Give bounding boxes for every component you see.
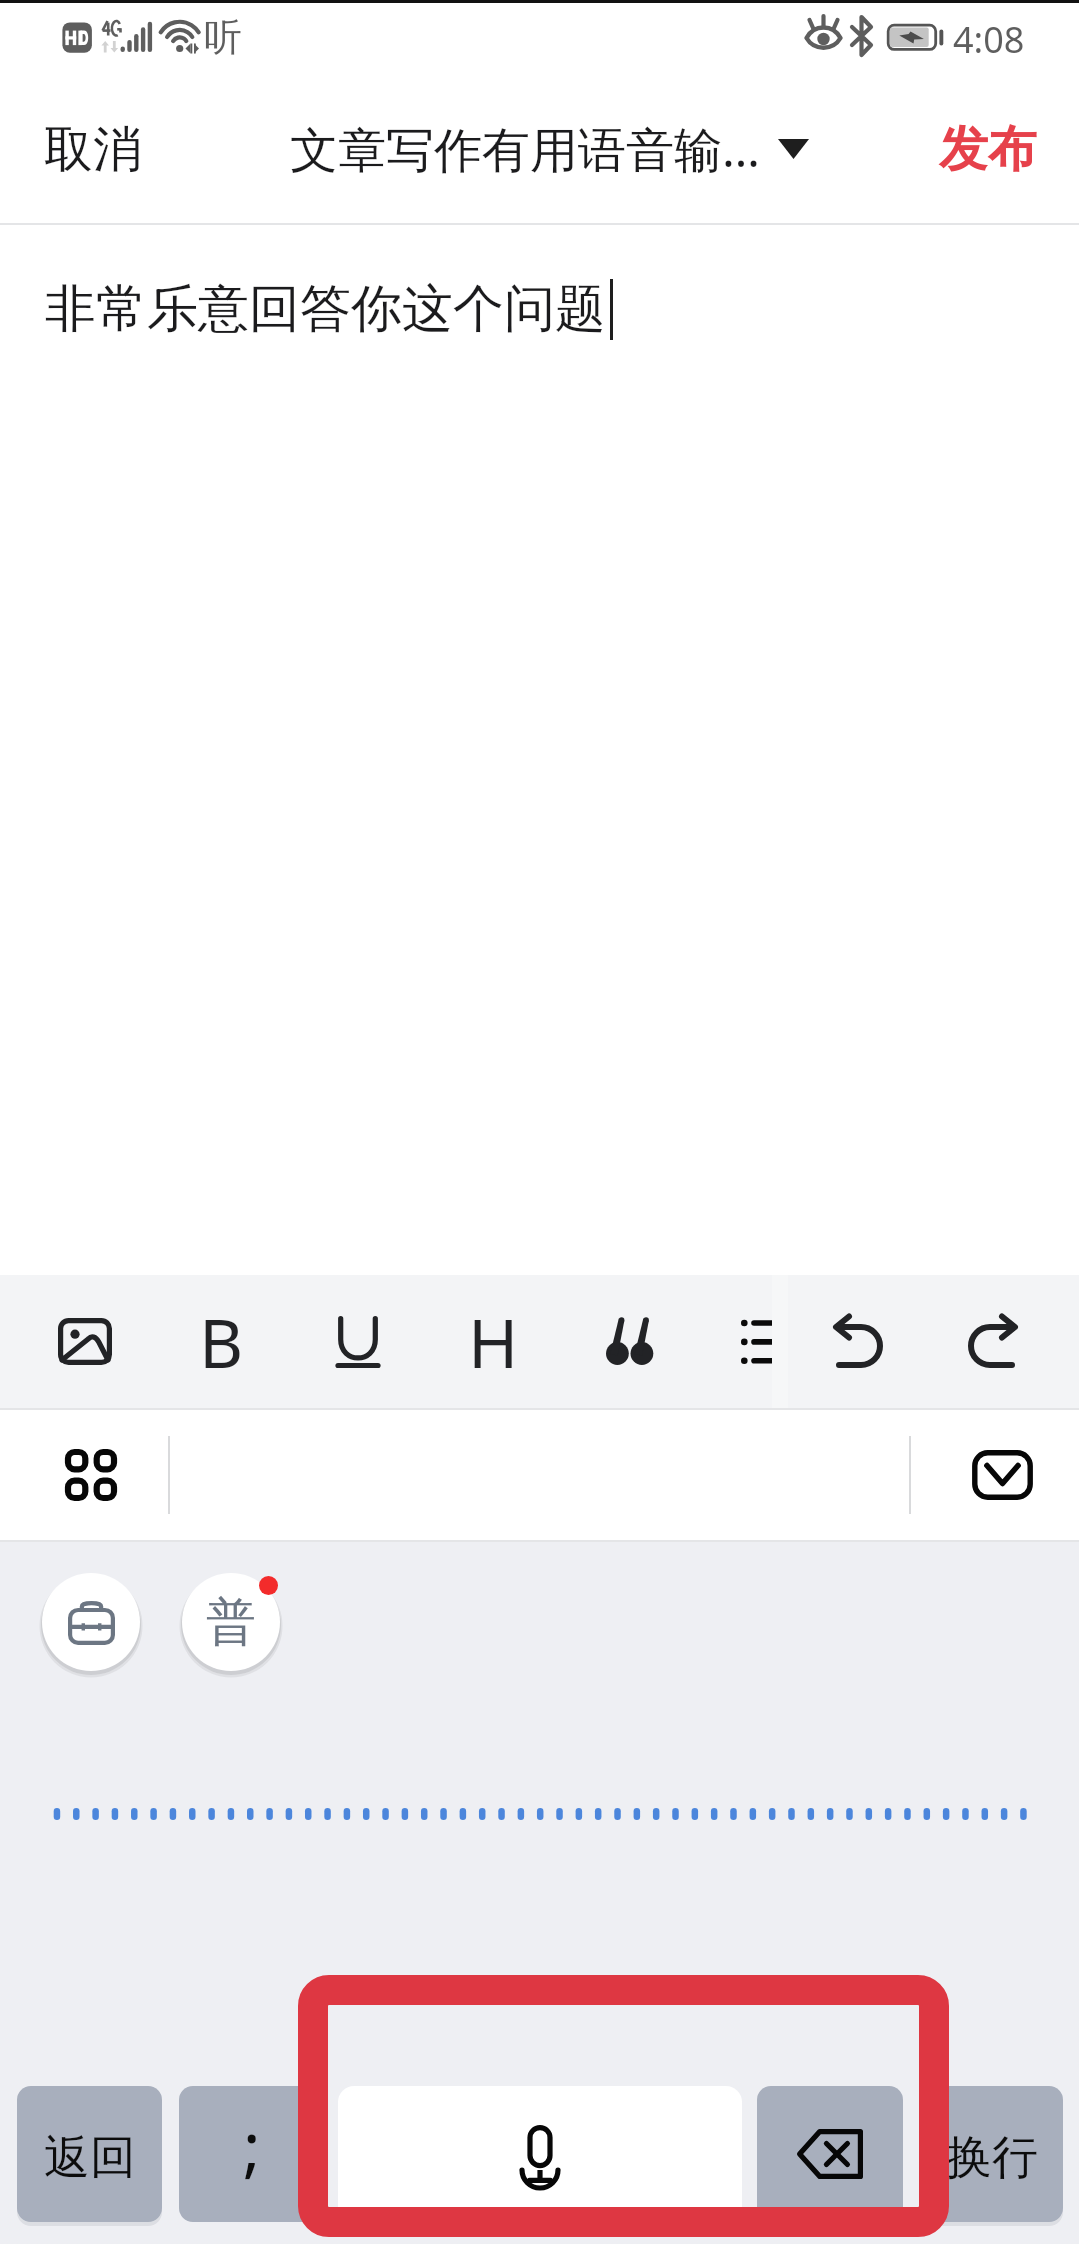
staticText: 取消 <box>44 119 142 181</box>
other: Underline <box>338 1317 378 1367</box>
staticText: 发布 <box>939 119 1037 181</box>
button[interactable]: H <box>425 1275 562 1408</box>
button[interactable]: Keyboard panel <box>27 1420 155 1530</box>
button[interactable]: Bullet list <box>695 1275 772 1408</box>
staticText: 非常乐意回答你这个问题 <box>45 277 606 341</box>
staticText: 换行 <box>946 2129 1038 2187</box>
other: Bullet list <box>741 1319 772 1365</box>
button[interactable]: 换行 <box>921 2086 1063 2222</box>
button[interactable]: ; <box>179 2086 324 2222</box>
button[interactable]: 返回 <box>17 2086 162 2222</box>
staticText: 文章写作有用语音输… <box>290 116 760 182</box>
button[interactable]: Insert image <box>18 1275 152 1408</box>
staticText: B <box>199 1295 244 1388</box>
staticText: ; <box>243 2099 261 2189</box>
other: Quote <box>606 1318 652 1365</box>
other: Insert image <box>58 1318 112 1365</box>
button[interactable]: Hide keyboard <box>947 1422 1057 1528</box>
staticText: H <box>468 1295 519 1388</box>
staticText: 普 <box>206 1591 256 1654</box>
button[interactable]: Redo <box>928 1275 1058 1408</box>
staticText: 返回 <box>44 2129 136 2187</box>
button[interactable]: Backspace <box>757 2086 903 2222</box>
button[interactable]: Tools <box>42 1573 140 1671</box>
other: Redo <box>968 1316 1018 1368</box>
button[interactable]: Pinyin mode <box>182 1573 280 1671</box>
button[interactable]: 发布 <box>911 97 1079 203</box>
button[interactable]: Underline <box>290 1275 425 1408</box>
staticText: 听 <box>204 13 242 61</box>
button[interactable]: B <box>152 1275 290 1408</box>
other: Undo <box>833 1316 883 1368</box>
staticText: 4:08 <box>953 15 1025 64</box>
button[interactable]: Quote <box>562 1275 695 1408</box>
button[interactable]: Voice input <box>338 2086 742 2222</box>
button[interactable]: 取消 <box>0 97 170 203</box>
button[interactable]: Undo <box>788 1275 928 1408</box>
button[interactable]: 文章写作有用语音输… <box>276 98 823 200</box>
